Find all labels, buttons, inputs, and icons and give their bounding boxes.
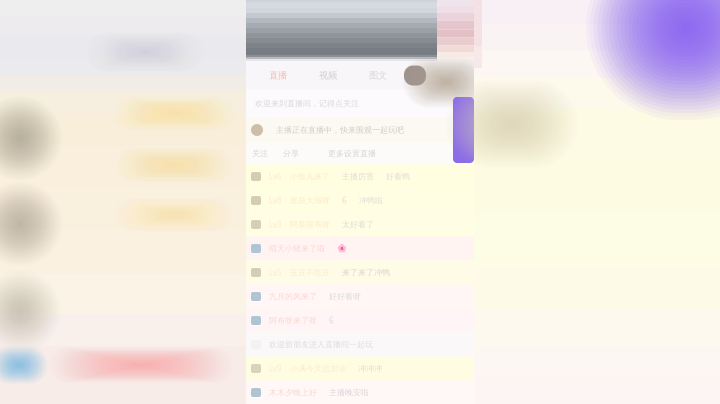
staticText: 冲鸭啦	[359, 196, 383, 205]
staticText: 小鱼儿来了	[290, 172, 330, 181]
staticText: Lv8	[269, 195, 282, 206]
button[interactable]: 视频	[319, 61, 337, 89]
staticText: 木木夕晚上好	[269, 388, 317, 397]
staticText: 晴天小猪来了啦	[269, 244, 325, 253]
staticText: 主播厉害	[342, 172, 374, 181]
staticText: 冲冲冲	[358, 364, 382, 373]
staticText: 九月的风来了	[269, 292, 317, 301]
staticText: 直播	[269, 70, 287, 81]
staticText: 主播正在直播中，快来围观一起玩吧	[276, 125, 404, 135]
staticText: 太好看了	[342, 220, 374, 229]
staticText: 阿布呀来了呀	[269, 316, 317, 325]
button[interactable]: Host profile	[404, 65, 426, 85]
staticText: Lv5	[269, 267, 282, 278]
button[interactable]: 更多设置直播	[328, 142, 376, 164]
staticText: 阿柴很乖呀	[290, 220, 330, 229]
staticText: 主播晚安啦	[329, 388, 369, 397]
staticText: 好看鸭	[386, 172, 410, 181]
button[interactable]: 关注	[252, 142, 268, 164]
staticText: 欢迎来到直播间，记得点关注	[255, 99, 359, 108]
staticText: 欢迎新朋友进入直播间一起玩	[269, 340, 373, 349]
staticText: Lv6	[269, 171, 282, 182]
staticText: 关注	[252, 149, 268, 158]
button[interactable]: 分享	[283, 142, 299, 164]
staticText: 分享	[283, 149, 299, 158]
staticText: 来了来了冲鸭	[342, 268, 390, 277]
staticText: 豆豆不吃豆	[290, 268, 330, 277]
staticText: Lv3	[269, 219, 282, 230]
staticText: 更多设置直播	[328, 149, 376, 158]
staticText: 星辰大海呀	[290, 196, 330, 205]
staticText: 好好看呀	[329, 292, 361, 301]
staticText: 6	[342, 195, 347, 206]
staticText: 小满今天也加油	[290, 364, 346, 373]
button[interactable]: Gift banner	[453, 97, 474, 163]
staticText: 图文	[369, 70, 387, 81]
staticText: 视频	[319, 70, 337, 81]
staticText: Lv9	[269, 363, 282, 374]
button[interactable]: 图文	[369, 61, 387, 89]
staticText: 🌸	[337, 244, 347, 253]
button[interactable]: 直播	[269, 61, 287, 89]
staticText: 6	[329, 315, 334, 326]
